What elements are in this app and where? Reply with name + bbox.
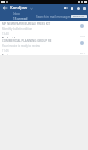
staticText: Monthly bulletin edition bbox=[2, 27, 33, 31]
button[interactable]: Search bbox=[75, 5, 81, 11]
staticText: Kandjow bbox=[10, 5, 28, 11]
button[interactable]: Back bbox=[2, 5, 8, 11]
staticText: Norbert J bbox=[2, 37, 15, 38]
staticText: 11:05 bbox=[2, 49, 9, 53]
staticText: MP NEWSPAPER BUREAU PRESS KIT bbox=[2, 22, 51, 26]
staticText: Search in mail messages bbox=[36, 15, 71, 19]
button[interactable]: Archive bbox=[69, 5, 75, 11]
button[interactable]: SELECT ALL bbox=[71, 15, 87, 18]
button[interactable]: More options bbox=[81, 5, 87, 11]
button[interactable]: COMMERCIAL PLANNING GROUP RE bbox=[0, 38, 88, 55]
staticText: 13:40 bbox=[2, 32, 9, 36]
staticText: Inbox bbox=[13, 12, 20, 16]
staticText: COMMERCIAL PLANNING GROUP RE bbox=[2, 39, 52, 43]
staticText: Your invoice is ready to review bbox=[2, 44, 40, 48]
staticText: Syntax bbox=[2, 54, 12, 55]
staticText: 15 unread bbox=[13, 17, 28, 21]
button[interactable]: Video call bbox=[63, 5, 69, 11]
staticText: SELECT ALL bbox=[73, 15, 85, 18]
staticText: 8:11 bbox=[80, 51, 85, 54]
button[interactable]: MP NEWSPAPER BUREAU PRESS KIT bbox=[0, 21, 88, 38]
staticText: 12:4 bbox=[80, 34, 85, 37]
